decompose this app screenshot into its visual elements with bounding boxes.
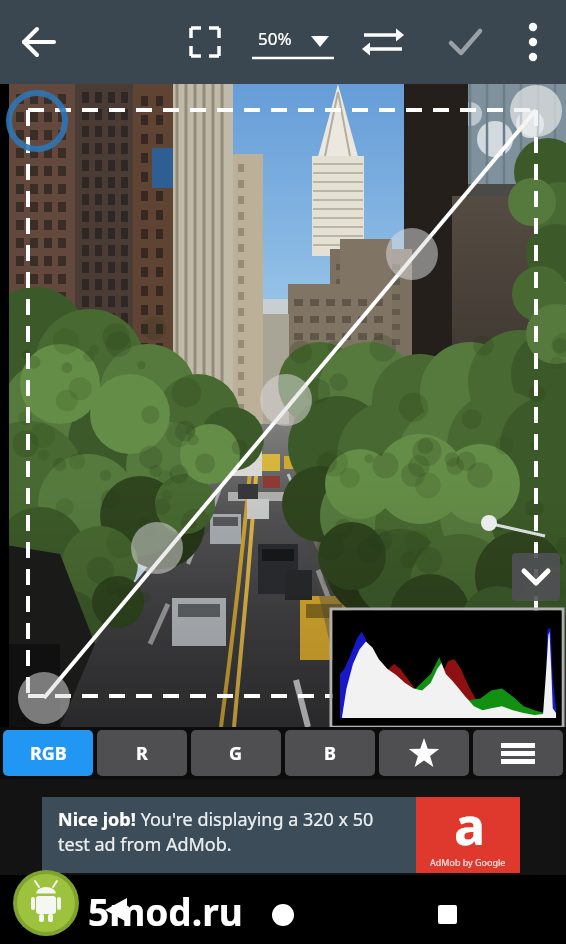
button[interactable]: B <box>285 730 375 776</box>
button[interactable]: R <box>97 730 187 776</box>
staticText: RGB <box>30 741 67 766</box>
button[interactable] <box>473 730 563 776</box>
staticText: Nice job! <box>58 807 136 832</box>
staticText: AdMob by Google <box>430 856 506 868</box>
staticText: R <box>136 741 148 766</box>
button[interactable] <box>14 18 62 66</box>
button[interactable] <box>181 18 229 66</box>
button[interactable]: Nice job! <box>42 797 520 873</box>
staticText: test ad from AdMob. <box>58 832 232 857</box>
button[interactable] <box>259 891 307 939</box>
button[interactable]: RGB <box>3 730 93 776</box>
button[interactable] <box>512 553 560 601</box>
button[interactable] <box>441 18 489 66</box>
button[interactable] <box>95 891 143 939</box>
staticText: a <box>454 789 486 860</box>
staticText: B <box>324 741 336 766</box>
button[interactable] <box>379 730 469 776</box>
staticText: You're displaying a 320 x 50 <box>136 807 374 832</box>
button[interactable] <box>359 18 407 66</box>
button[interactable] <box>509 18 557 66</box>
staticText: G <box>229 741 243 766</box>
staticText: 5mod.ru <box>88 886 243 936</box>
button[interactable] <box>423 891 471 939</box>
staticText: 50% <box>258 27 292 50</box>
button[interactable]: G <box>191 730 281 776</box>
button[interactable]: 50% <box>248 20 338 64</box>
